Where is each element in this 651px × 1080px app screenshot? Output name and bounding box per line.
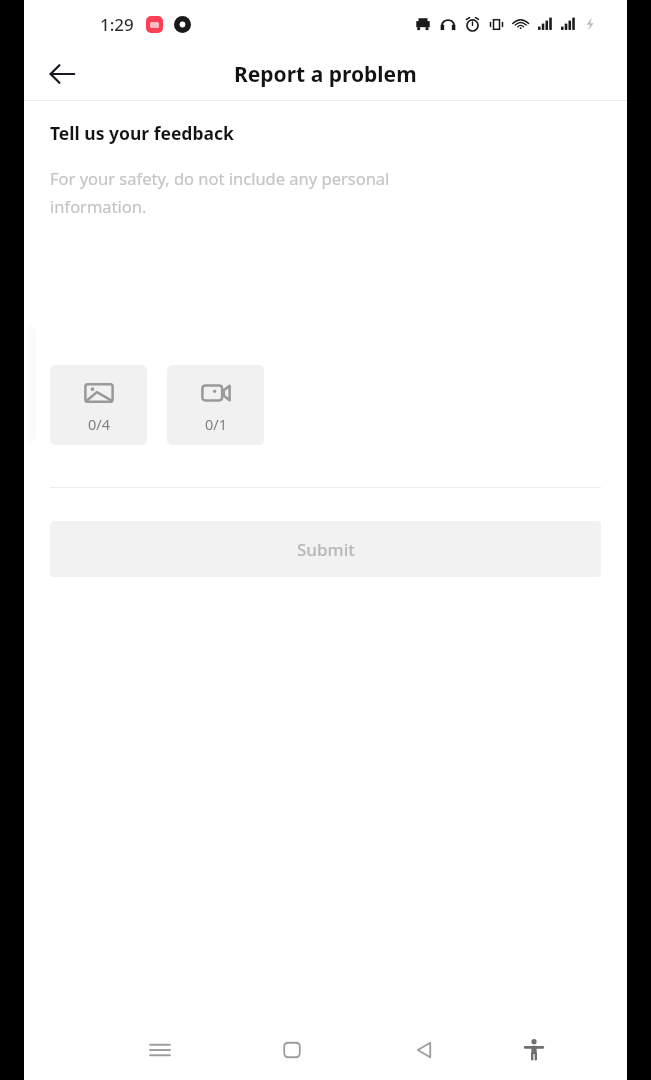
staticText: For your safety, do not include any pers… — [50, 167, 390, 189]
button[interactable]: Add photos — [50, 365, 147, 445]
button[interactable]: Back — [38, 50, 86, 98]
staticText: Tell us your feedback — [50, 121, 234, 145]
button[interactable]: Home — [268, 1026, 316, 1074]
staticText: Submit — [297, 538, 355, 561]
button[interactable]: Submit — [50, 521, 601, 577]
staticText: 1:29 — [100, 13, 134, 36]
button[interactable]: Recent apps — [136, 1026, 184, 1074]
staticText: 0/1 — [205, 414, 227, 434]
button[interactable]: Add video — [167, 365, 264, 445]
button[interactable]: Accessibility — [510, 1026, 558, 1074]
staticText: 0/4 — [88, 414, 110, 434]
staticText: information. — [50, 195, 147, 217]
staticText: Report a problem — [234, 60, 417, 89]
button[interactable]: Back — [400, 1026, 448, 1074]
